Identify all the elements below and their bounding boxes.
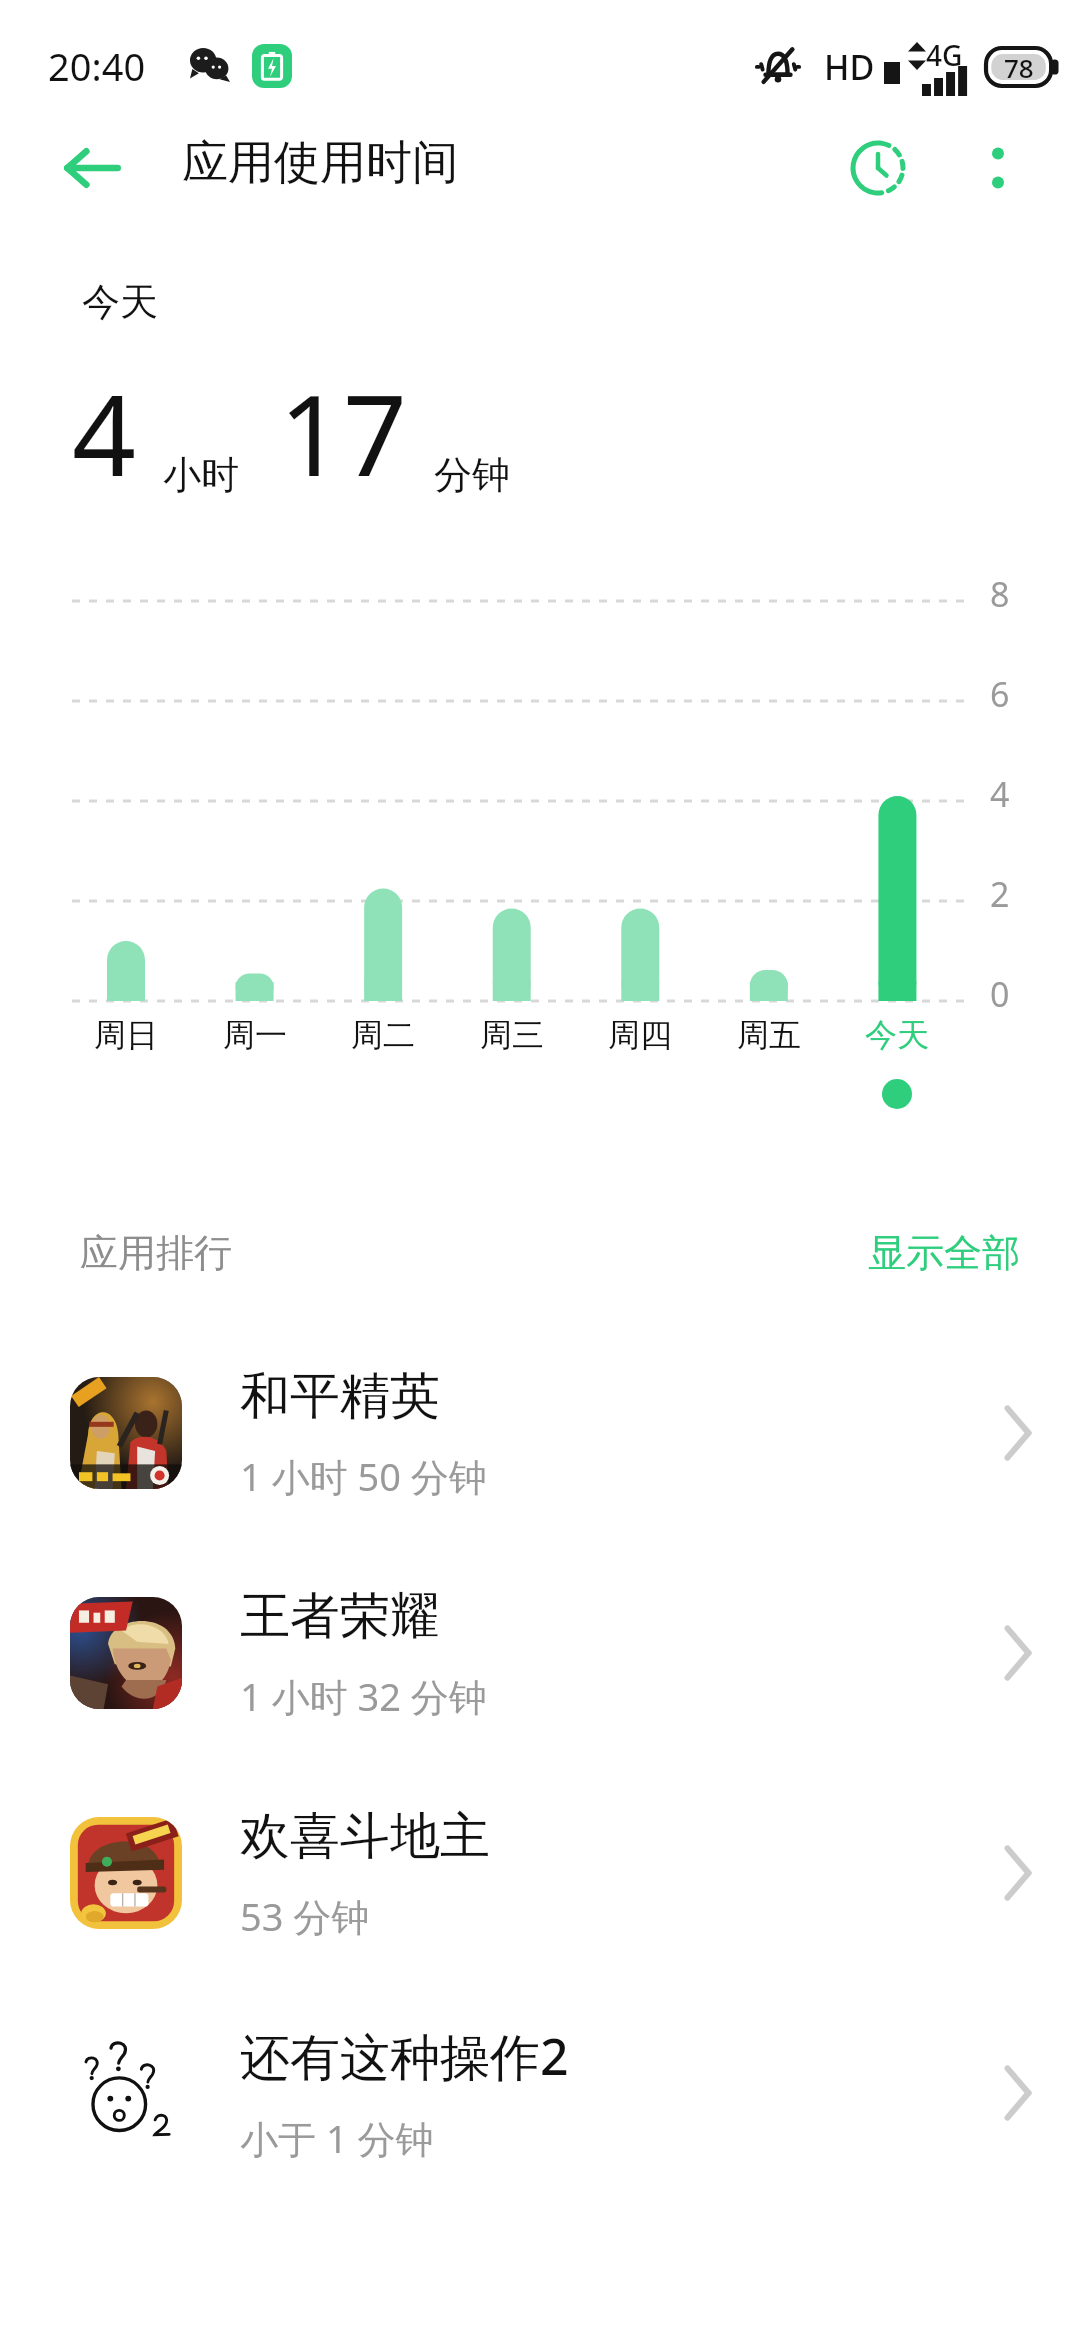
staticText: 53 分钟: [240, 1890, 370, 1942]
staticText: 周三: [452, 1015, 572, 1055]
other: 查看详情: [968, 2043, 1068, 2143]
staticText: 4G: [926, 36, 963, 74]
staticText: 周四: [580, 1015, 700, 1055]
staticText: 1 小时 50 分钟: [240, 1450, 487, 1502]
staticText: 4: [72, 356, 137, 509]
staticText: 小于 1 分钟: [240, 2112, 434, 2164]
staticText: 2: [990, 871, 1010, 917]
staticText: 6: [990, 671, 1010, 717]
staticText: 17: [279, 356, 408, 509]
button[interactable]: 和平精英: [0, 1323, 1080, 1543]
staticText: 小时: [163, 451, 239, 499]
staticText: 应用排行: [80, 1229, 232, 1277]
button[interactable]: 欢喜斗地主: [0, 1763, 1080, 1983]
staticText: 8: [990, 571, 1010, 617]
staticText: 还有这种操作2: [240, 2022, 569, 2090]
staticText: 应用使用时间: [182, 134, 458, 192]
staticText: 和平精英: [240, 1365, 440, 1428]
other: 查看详情: [968, 1383, 1068, 1483]
staticText: 王者荣耀: [240, 1585, 440, 1648]
staticText: 20:40: [48, 40, 146, 92]
staticText: 4: [990, 771, 1010, 817]
button[interactable]: 显示全部: [848, 1217, 1080, 1289]
staticText: 今天: [837, 1015, 957, 1055]
staticText: 欢喜斗地主: [240, 1805, 490, 1868]
staticText: 显示全部: [868, 1229, 1020, 1277]
other: 查看详情: [968, 1603, 1068, 1703]
button[interactable]: 王者荣耀: [0, 1543, 1080, 1763]
other: 查看详情: [968, 1823, 1068, 1923]
staticText: 周日: [66, 1015, 186, 1055]
button[interactable]: 更多选项: [958, 128, 1038, 208]
staticText: 1 小时 32 分钟: [240, 1670, 487, 1722]
staticText: 分钟: [434, 451, 510, 499]
button[interactable]: 还有这种操作2: [0, 1983, 1080, 2203]
button[interactable]: 使用时间限制: [838, 128, 918, 208]
staticText: 周二: [323, 1015, 443, 1055]
staticText: 周五: [709, 1015, 829, 1055]
button[interactable]: 返回: [52, 128, 132, 208]
staticText: 周一: [195, 1015, 315, 1055]
staticText: 0: [990, 971, 1010, 1017]
staticText: HD: [824, 44, 875, 90]
staticText: 78: [1004, 50, 1034, 85]
staticText: 今天: [82, 278, 158, 326]
